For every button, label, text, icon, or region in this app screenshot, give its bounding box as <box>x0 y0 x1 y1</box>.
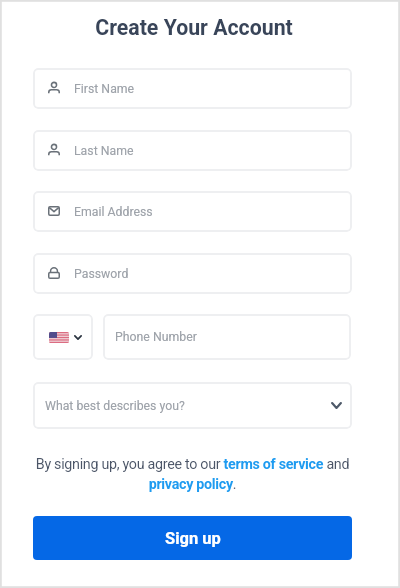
staticText: Sign up <box>165 529 221 548</box>
button[interactable]: What best describes you? <box>33 382 352 429</box>
staticText: Email Address <box>74 205 153 219</box>
staticText: Create Your Account <box>95 15 293 40</box>
button[interactable]: Sign up <box>33 516 352 560</box>
staticText: Phone Number <box>115 330 197 344</box>
button[interactable]: Password <box>33 253 352 294</box>
button[interactable]: Phone Number <box>103 314 351 360</box>
button[interactable]: Email Address <box>33 191 352 232</box>
staticText: First Name <box>74 82 135 96</box>
button[interactable]: Last Name <box>33 130 352 171</box>
staticText: Password <box>74 267 129 281</box>
staticText: Last Name <box>74 144 134 158</box>
staticText: What best describes you? <box>45 399 185 413</box>
staticText: By signing up, you agree to our terms of… <box>33 456 352 492</box>
button[interactable]: First Name <box>33 68 352 109</box>
button[interactable]: Select country calling code <box>33 314 93 360</box>
